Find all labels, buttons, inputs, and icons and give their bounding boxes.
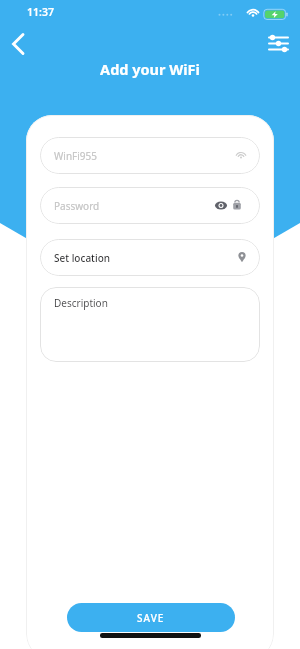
button[interactable]: SAVE [67, 603, 235, 632]
button[interactable]: Password [40, 187, 260, 224]
button[interactable] [262, 30, 294, 62]
staticText: WinFi955 [54, 149, 97, 163]
staticText: Password [54, 199, 100, 213]
button[interactable]: Set location [40, 239, 260, 276]
staticText: SAVE [137, 611, 165, 625]
staticText: Add your WiFi [0, 59, 300, 79]
button[interactable]: WinFi955 [40, 137, 260, 174]
button[interactable]: Description [40, 287, 260, 362]
staticText: Description [54, 296, 108, 310]
staticText: 11:37 [27, 5, 54, 19]
staticText: Set location [54, 251, 111, 265]
button[interactable] [6, 28, 38, 60]
